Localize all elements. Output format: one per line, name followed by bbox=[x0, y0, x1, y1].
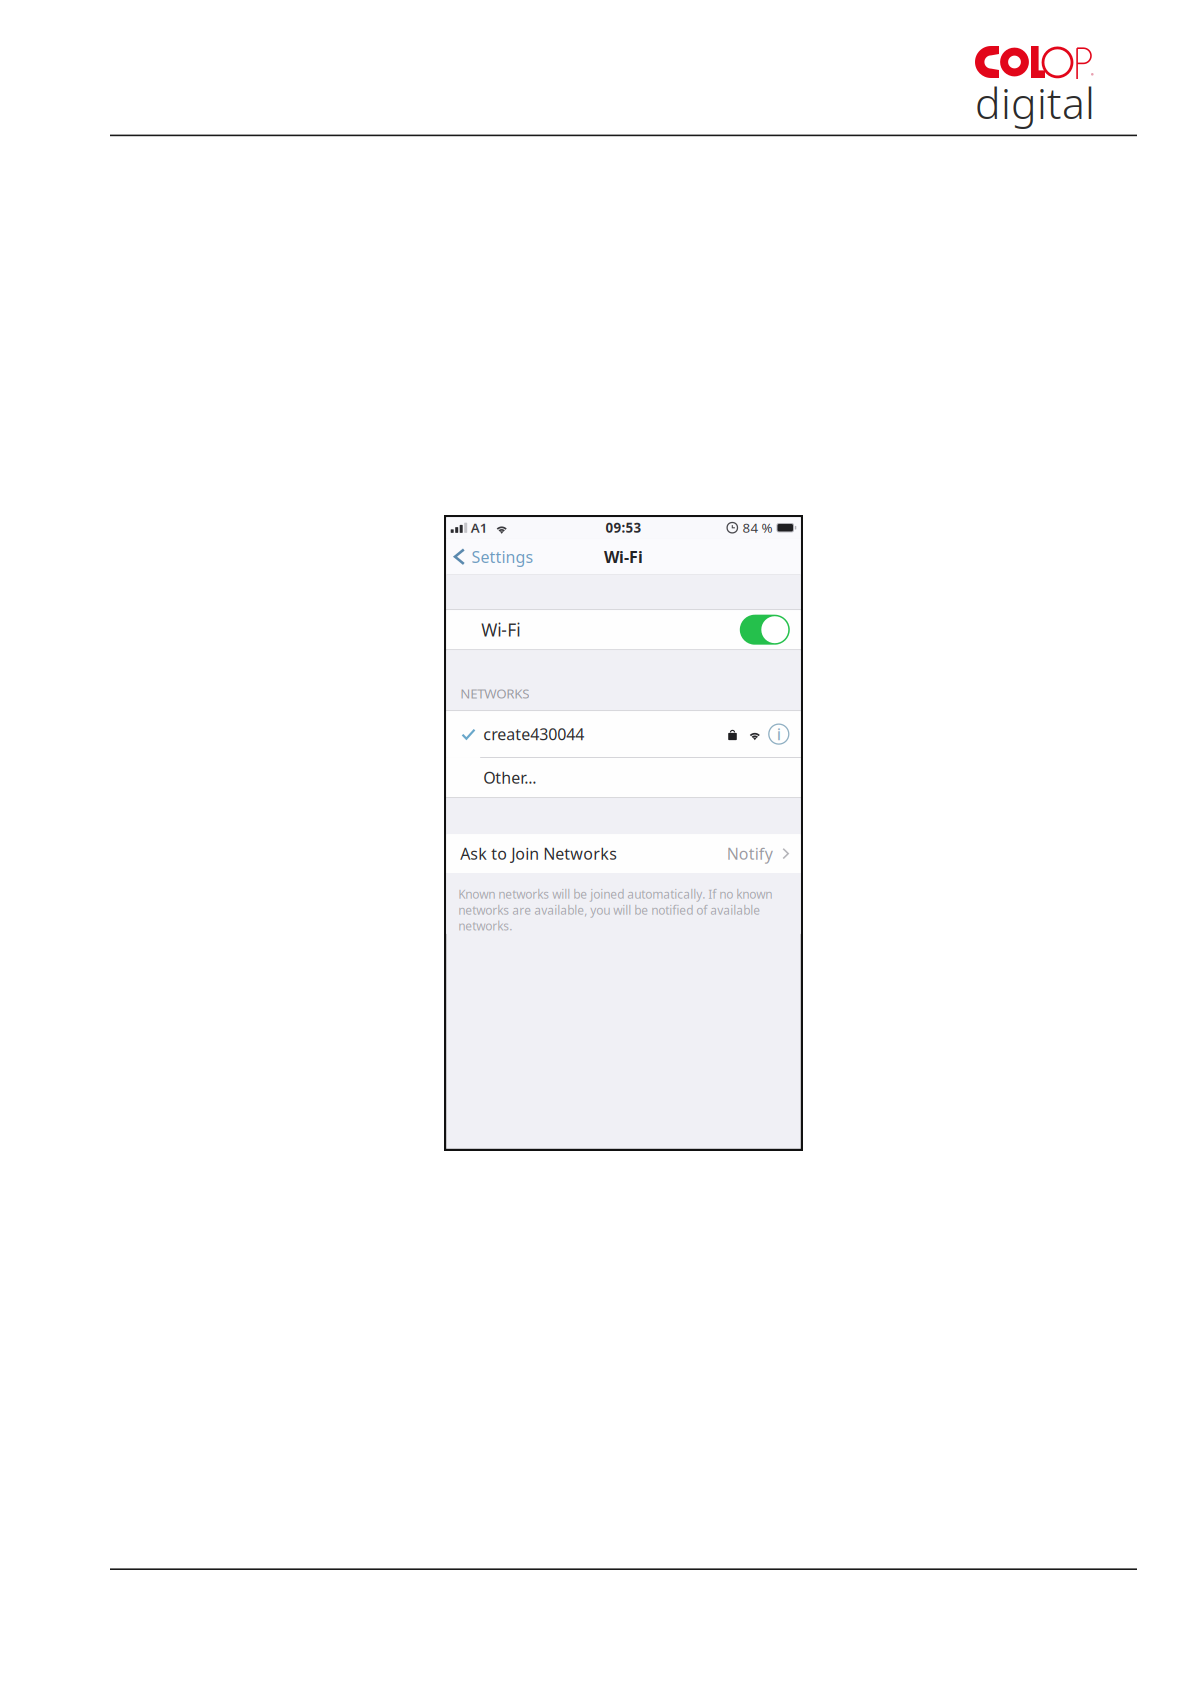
staticText: Notify bbox=[727, 843, 773, 864]
staticText: digital bbox=[975, 74, 1095, 131]
button[interactable]: Other... bbox=[446, 758, 801, 797]
button[interactable]: Ask to Join Networks bbox=[446, 834, 801, 873]
button[interactable]: Wi-Fi on bbox=[740, 615, 790, 645]
staticText: Wi-Fi bbox=[481, 618, 520, 641]
staticText: 84 % bbox=[742, 519, 772, 536]
staticText: 09:53 bbox=[605, 519, 641, 536]
staticText: Ask to Join Networks bbox=[460, 843, 617, 864]
staticText: Wi-Fi bbox=[604, 546, 643, 567]
staticText: A1 bbox=[471, 519, 488, 536]
staticText: Other... bbox=[483, 767, 536, 788]
staticText: Settings bbox=[472, 546, 534, 567]
staticText: Known networks will be joined automatica… bbox=[458, 886, 772, 934]
staticText: create430044 bbox=[483, 723, 584, 745]
button[interactable]: Settings bbox=[446, 538, 536, 575]
button[interactable]: create430044 bbox=[446, 711, 801, 757]
staticText: NETWORKS bbox=[460, 684, 529, 702]
staticText: i bbox=[777, 723, 781, 745]
